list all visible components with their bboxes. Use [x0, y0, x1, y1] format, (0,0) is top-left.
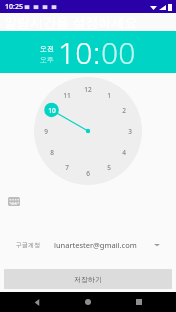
staticText: 11 [63, 91, 71, 100]
button[interactable]: 홈 [74, 292, 102, 312]
staticText: 6 [86, 169, 90, 178]
button[interactable]: 오후 [40, 55, 54, 64]
staticText: 9 [44, 127, 48, 136]
staticText: 12 [84, 85, 92, 94]
staticText: 2 [122, 106, 126, 115]
staticText: 4 [122, 148, 126, 157]
staticText: : [93, 32, 101, 73]
button[interactable]: 00 [101, 32, 136, 73]
button[interactable]: 구글계정 [0, 233, 176, 257]
staticText: 저장하기 [74, 275, 102, 284]
button[interactable]: 시간 선택 다이얼 [34, 77, 142, 185]
staticText: 8 [50, 148, 54, 157]
staticText: lunartester@gmail.com [54, 240, 137, 250]
staticText: 3 [128, 127, 132, 136]
staticText: 10 [48, 106, 56, 115]
button[interactable]: 오전 [40, 44, 54, 53]
staticText: 오전 [40, 44, 54, 53]
staticText: 00 [101, 32, 136, 73]
button[interactable]: 저장하기 [4, 269, 172, 289]
staticText: 5 [107, 163, 111, 172]
button[interactable]: 뒤로 [23, 292, 51, 312]
staticText: 구글계정 [16, 241, 40, 249]
staticText: 7 [65, 163, 69, 172]
staticText: 10:25 [5, 2, 23, 12]
button[interactable]: 최근 앱 [125, 292, 153, 312]
staticText: 1 [107, 91, 111, 100]
button[interactable]: 키보드 입력 [8, 197, 20, 206]
button[interactable]: 10 [58, 32, 93, 73]
staticText: 10 [58, 32, 93, 73]
staticText: 오후 [40, 55, 54, 64]
